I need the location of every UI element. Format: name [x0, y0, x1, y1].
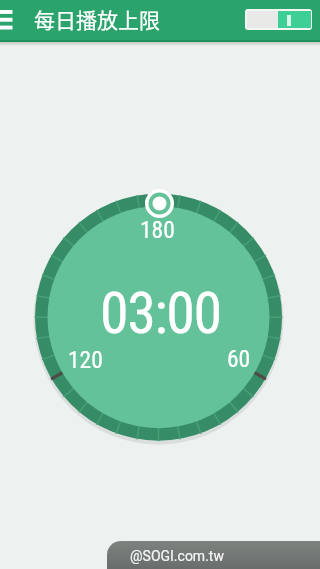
staticText: 03:00 — [100, 279, 221, 347]
staticText: 120 — [68, 346, 103, 374]
staticText: 180 — [140, 216, 175, 244]
button[interactable] — [245, 9, 312, 30]
button[interactable] — [0, 0, 24, 40]
staticText: 60 — [227, 345, 251, 373]
staticText: 每日播放上限 — [34, 4, 160, 34]
staticText: @SOGI.com.tw — [130, 548, 224, 564]
button[interactable] — [145, 189, 174, 218]
